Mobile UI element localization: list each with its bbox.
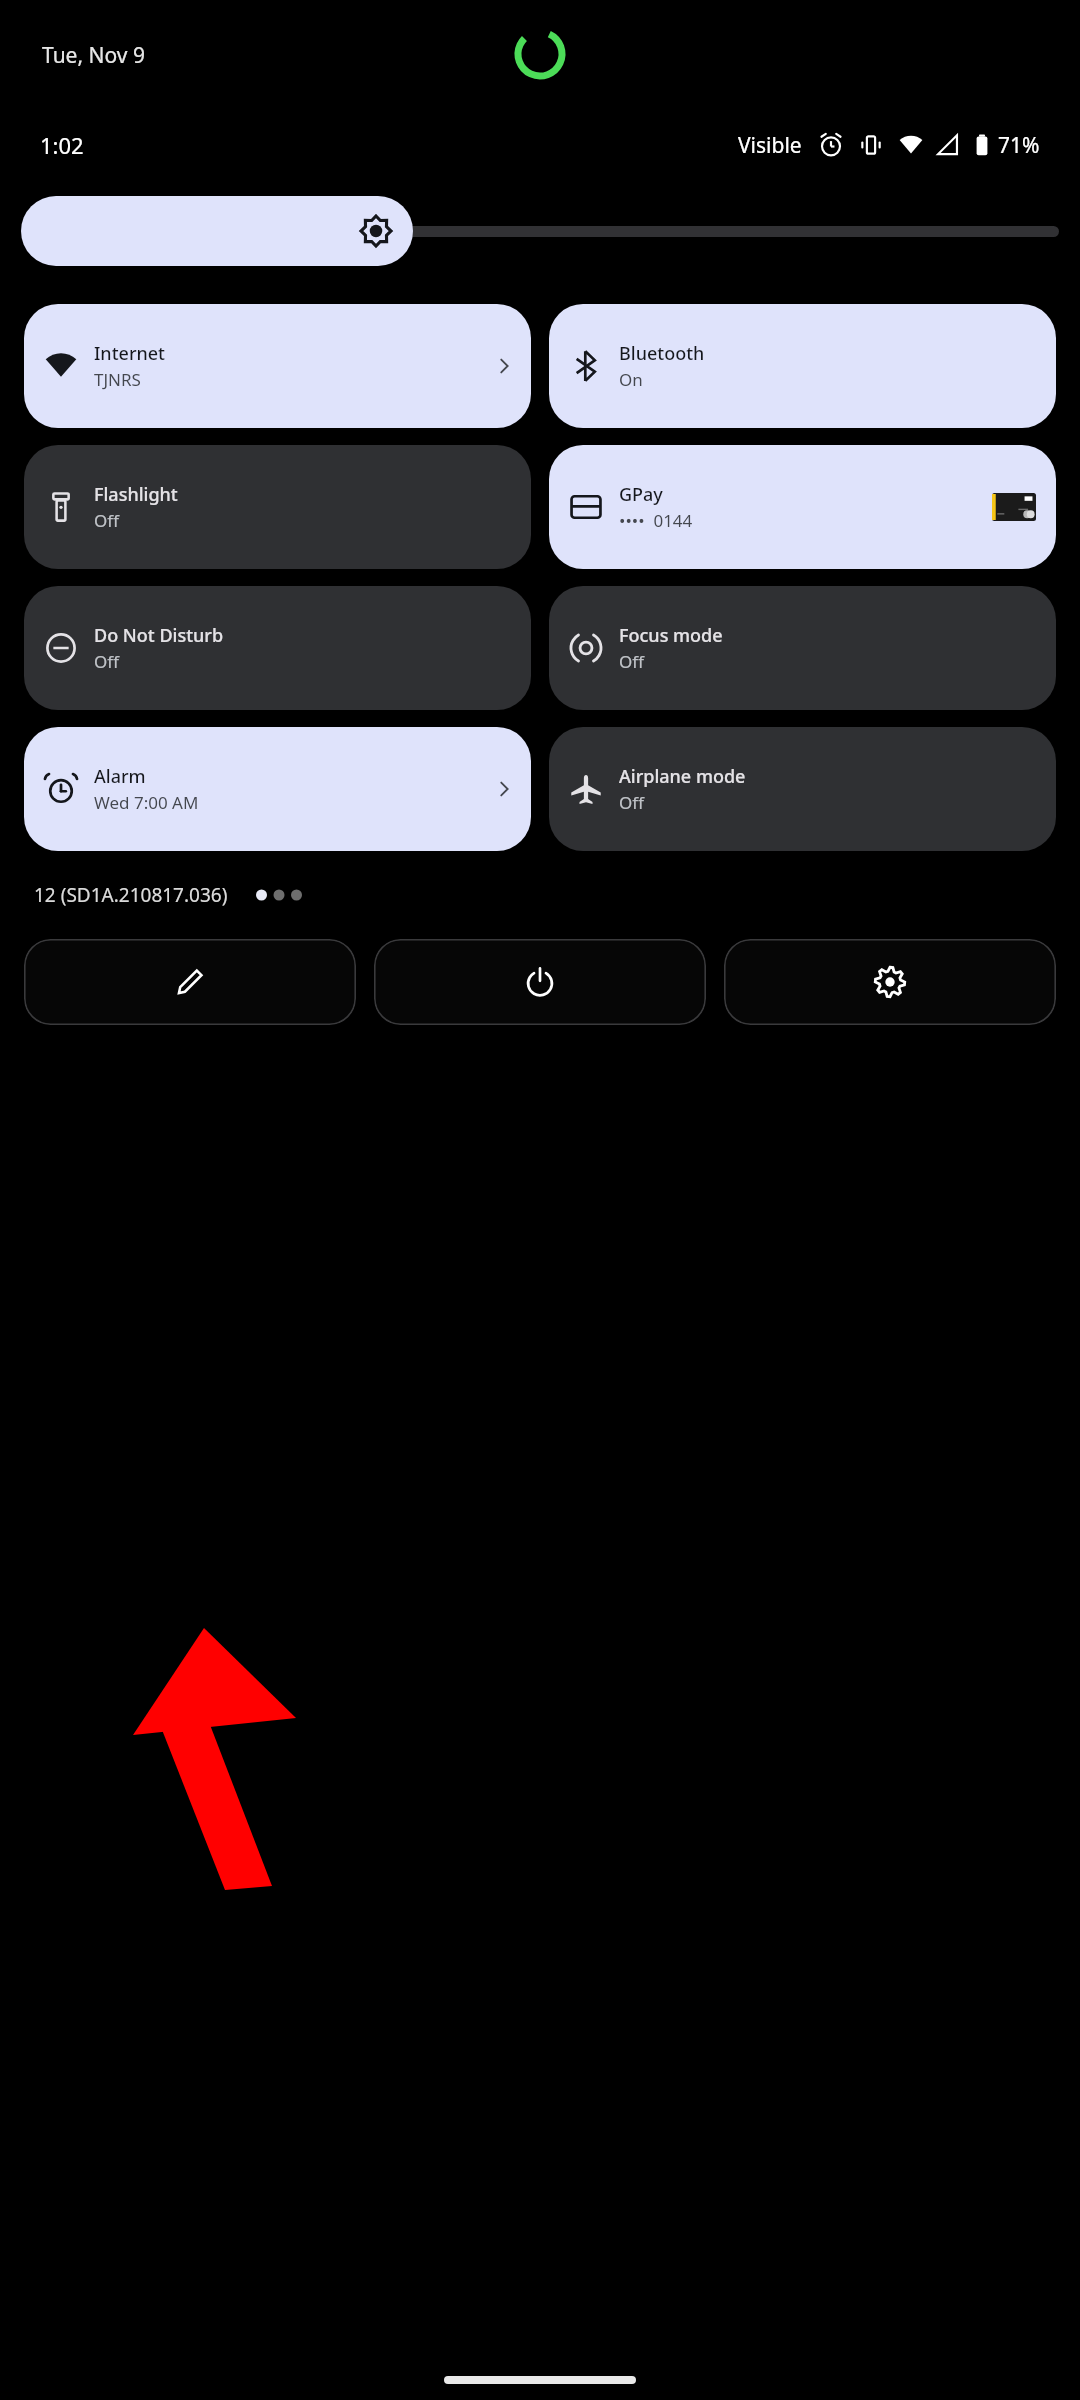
- button[interactable]: Alarm: [24, 727, 531, 851]
- button[interactable]: Brightness: [21, 196, 413, 266]
- staticText: Focus mode: [619, 623, 723, 648]
- button[interactable]: GPay: [549, 445, 1056, 569]
- staticText: Do Not Disturb: [94, 623, 224, 648]
- staticText: 1:02: [40, 130, 84, 160]
- staticText: •••• 0144: [619, 509, 693, 532]
- staticText: Airplane mode: [619, 764, 746, 789]
- staticText: Off: [619, 791, 644, 814]
- button[interactable]: Airplane mode: [549, 727, 1056, 851]
- other: Wi-Fi: [898, 132, 924, 158]
- staticText: 12 (SD1A.210817.036): [34, 882, 228, 908]
- button[interactable]: Flashlight: [24, 445, 531, 569]
- staticText: TJNRS: [94, 368, 141, 391]
- staticText: Off: [94, 650, 119, 673]
- staticText: Internet: [94, 341, 166, 366]
- button[interactable]: Bluetooth: [549, 304, 1056, 428]
- button[interactable]: Internet: [24, 304, 531, 428]
- other: Battery: [970, 133, 994, 157]
- other: Mobile signal: [934, 132, 960, 158]
- other: Alarm set: [818, 132, 844, 158]
- staticText: Off: [619, 650, 644, 673]
- staticText: 71%: [998, 131, 1040, 160]
- staticText: On: [619, 368, 643, 391]
- button[interactable]: Power: [374, 939, 706, 1025]
- staticText: Bluetooth: [619, 341, 705, 366]
- staticText: Visible: [738, 131, 802, 160]
- staticText: GPay: [619, 482, 663, 507]
- button[interactable]: Edit tiles: [24, 939, 356, 1025]
- staticText: Tue, Nov 9: [42, 41, 145, 70]
- staticText: Wed 7:00 AM: [94, 791, 199, 814]
- button[interactable]: Do Not Disturb: [24, 586, 531, 710]
- other: Vibrate: [858, 132, 884, 158]
- staticText: Alarm: [94, 764, 146, 789]
- button[interactable]: Focus mode: [549, 586, 1056, 710]
- button[interactable]: Settings: [724, 939, 1056, 1025]
- staticText: Flashlight: [94, 482, 178, 507]
- staticText: Off: [94, 509, 119, 532]
